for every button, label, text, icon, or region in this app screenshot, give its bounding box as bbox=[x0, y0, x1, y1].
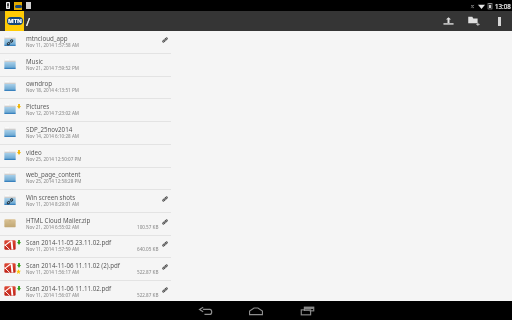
staticText: Nov 11, 2014 1:56:07 AM bbox=[26, 292, 79, 298]
staticText: Scan 2014-11-06 11.11.02 (2).pdf bbox=[26, 261, 120, 269]
staticText: Nov 14, 2014 6:10:28 AM bbox=[26, 133, 79, 139]
staticText: web_page_content bbox=[26, 170, 81, 178]
staticText: owndrop bbox=[26, 79, 53, 87]
button[interactable]: Scan 2014-11-05 23.11.02.pdf bbox=[0, 235, 512, 258]
staticText: HTML Cloud Mailer.zip bbox=[26, 216, 91, 224]
button[interactable]: MTN bbox=[5, 11, 24, 31]
staticText: 640.05 KB bbox=[137, 246, 159, 252]
staticText: mtncloud_app bbox=[26, 34, 68, 42]
button[interactable]: Scan 2014-11-06 11.11.02.pdf bbox=[0, 281, 512, 304]
staticText: Nov 21, 2014 7:59:52 PM bbox=[26, 65, 79, 71]
staticText: / bbox=[26, 14, 31, 29]
staticText: Nov 25, 2014 12:58:28 PM bbox=[26, 178, 82, 184]
staticText: 522.87 KB bbox=[137, 292, 159, 298]
button[interactable]: web_page_content bbox=[0, 167, 512, 190]
staticText: Nov 11, 2014 1:57:58 AM bbox=[26, 42, 79, 48]
staticText: Scan 2014-11-06 11.11.02.pdf bbox=[26, 284, 112, 292]
button[interactable]: Upload bbox=[440, 11, 464, 31]
button[interactable]: Scan 2014-11-06 11.11.02 (2).pdf bbox=[0, 258, 512, 281]
button[interactable]: Pictures bbox=[0, 99, 512, 122]
button[interactable]: HTML Cloud Mailer.zip bbox=[0, 213, 512, 236]
staticText: Nov 25, 2014 12:50:07 PM bbox=[26, 156, 82, 162]
button[interactable]: Win screen shots bbox=[0, 190, 512, 213]
staticText: video bbox=[26, 148, 42, 156]
staticText: Nov 12, 2014 7:23:02 AM bbox=[26, 110, 79, 116]
button[interactable]: Recent apps bbox=[290, 301, 324, 320]
staticText: Nov 11, 2014 8:29:01 AM bbox=[26, 201, 79, 207]
button[interactable]: video bbox=[0, 145, 512, 168]
staticText: Music bbox=[26, 57, 43, 65]
staticText: Nov 11, 2014 1:57:59 AM bbox=[26, 246, 79, 252]
button[interactable]: owndrop bbox=[0, 76, 512, 99]
button[interactable]: SDP_25nov2014 bbox=[0, 122, 512, 145]
staticText: 13:08 bbox=[495, 2, 511, 10]
staticText: Nov 11, 2014 1:56:17 AM bbox=[26, 269, 79, 275]
button[interactable]: Music bbox=[0, 54, 512, 77]
staticText: SDP_25nov2014 bbox=[26, 125, 73, 133]
staticText: Nov 21, 2014 6:55:02 AM bbox=[26, 224, 79, 230]
staticText: MTN bbox=[8, 17, 22, 25]
button[interactable]: New folder bbox=[465, 11, 489, 31]
button[interactable]: More options bbox=[491, 11, 509, 31]
button[interactable]: mtncloud_app bbox=[0, 31, 512, 54]
staticText: Scan 2014-11-05 23.11.02.pdf bbox=[26, 238, 112, 246]
staticText: 522.87 KB bbox=[137, 269, 159, 275]
button[interactable]: Back bbox=[188, 301, 222, 320]
staticText: Win screen shots bbox=[26, 193, 76, 201]
button[interactable]: Home bbox=[239, 301, 273, 320]
staticText: Nov 18, 2014 4:13:51 PM bbox=[26, 87, 79, 93]
staticText: 100.57 KB bbox=[137, 224, 159, 230]
staticText: Pictures bbox=[26, 102, 50, 110]
